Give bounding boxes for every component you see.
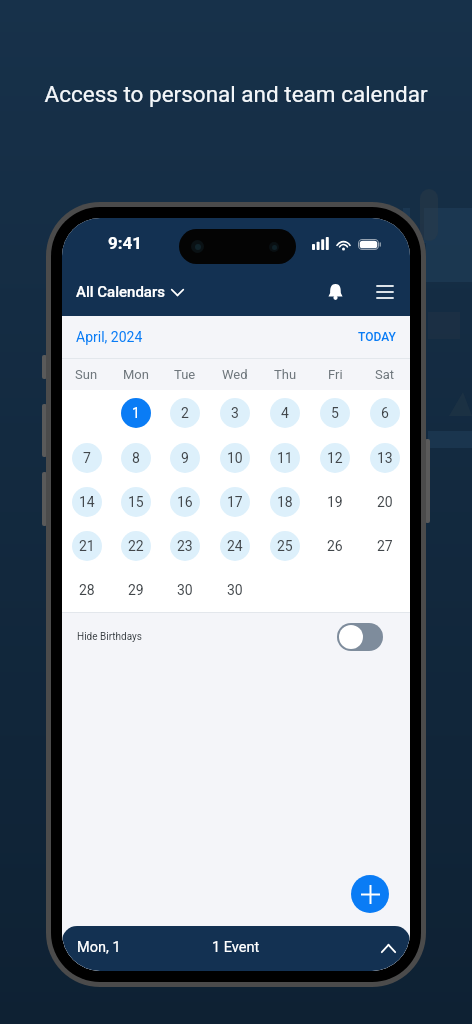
- staticText: 25: [277, 538, 293, 554]
- staticText: 30: [227, 582, 243, 598]
- staticText: April, 2024: [76, 329, 143, 345]
- button[interactable]: Hide Birthdays: [62, 613, 410, 660]
- button[interactable]: 17: [210, 480, 260, 524]
- button[interactable]: 13: [360, 435, 410, 480]
- staticText: 23: [177, 538, 193, 554]
- button[interactable]: TODAY: [358, 330, 396, 344]
- staticText: All Calendars: [76, 283, 165, 301]
- button[interactable]: 29: [111, 568, 160, 612]
- staticText: 2: [181, 405, 189, 421]
- staticText: 27: [377, 538, 393, 554]
- button[interactable]: 9: [160, 435, 210, 480]
- staticText: 29: [128, 582, 144, 598]
- staticText: TODAY: [358, 330, 396, 344]
- button[interactable]: 3: [210, 390, 260, 435]
- staticText: 13: [377, 450, 393, 466]
- button[interactable]: 28: [62, 568, 111, 612]
- staticText: 16: [177, 494, 193, 510]
- button[interactable]: 20: [360, 480, 410, 524]
- button[interactable]: 23: [160, 524, 210, 568]
- staticText: 14: [79, 494, 95, 510]
- button[interactable]: 18: [260, 480, 310, 524]
- button[interactable]: April, 2024: [76, 329, 143, 345]
- button[interactable]: 21: [62, 524, 111, 568]
- staticText: 8: [132, 450, 140, 466]
- button[interactable]: 15: [111, 480, 160, 524]
- button[interactable]: 30: [210, 568, 260, 612]
- button[interactable]: 1: [111, 390, 160, 435]
- button[interactable]: 12: [310, 435, 360, 480]
- button[interactable]: 2: [160, 390, 210, 435]
- button[interactable]: Mon, 1: [62, 926, 410, 971]
- staticText: 9: [181, 450, 189, 466]
- staticText: 1 Event: [212, 939, 260, 956]
- staticText: Sun: [75, 367, 98, 382]
- staticText: Tue: [174, 367, 196, 382]
- staticText: 26: [327, 538, 343, 554]
- staticText: 17: [227, 494, 243, 510]
- staticText: 28: [79, 582, 95, 598]
- button[interactable]: Menu: [369, 276, 400, 308]
- button[interactable]: 7: [62, 435, 111, 480]
- staticText: 10: [227, 450, 243, 466]
- staticText: Sat: [375, 367, 395, 382]
- staticText: 6: [381, 405, 389, 421]
- staticText: Thu: [274, 367, 297, 382]
- staticText: Hide Birthdays: [77, 631, 142, 643]
- button[interactable]: 11: [260, 435, 310, 480]
- staticText: 20: [377, 494, 393, 510]
- staticText: Wed: [222, 367, 248, 382]
- staticText: Mon, 1: [77, 939, 121, 956]
- staticText: 4: [281, 405, 289, 421]
- button[interactable]: 22: [111, 524, 160, 568]
- staticText: 7: [83, 450, 91, 466]
- button[interactable]: 25: [260, 524, 310, 568]
- button[interactable]: Notifications: [319, 275, 351, 309]
- staticText: 21: [79, 538, 95, 554]
- button[interactable]: 4: [260, 390, 310, 435]
- staticText: 15: [128, 494, 144, 510]
- staticText: 11: [277, 450, 293, 466]
- staticText: 22: [128, 538, 144, 554]
- button[interactable]: 24: [210, 524, 260, 568]
- button[interactable]: 5: [310, 390, 360, 435]
- button[interactable]: All Calendars: [76, 278, 185, 306]
- button[interactable]: 30: [160, 568, 210, 612]
- button[interactable]: 26: [310, 524, 360, 568]
- staticText: Fri: [328, 367, 343, 382]
- staticText: 19: [327, 494, 343, 510]
- button[interactable]: Add event: [351, 875, 389, 913]
- button[interactable]: 27: [360, 524, 410, 568]
- button[interactable]: 6: [360, 390, 410, 435]
- button[interactable]: 10: [210, 435, 260, 480]
- staticText: 1: [132, 405, 140, 421]
- button[interactable]: 16: [160, 480, 210, 524]
- staticText: Access to personal and team calendar: [44, 81, 428, 107]
- staticText: 3: [231, 405, 239, 421]
- button[interactable]: 8: [111, 435, 160, 480]
- staticText: 9:41: [108, 233, 143, 253]
- staticText: 30: [177, 582, 193, 598]
- button[interactable]: 14: [62, 480, 111, 524]
- staticText: 5: [331, 405, 339, 421]
- staticText: 18: [277, 494, 293, 510]
- staticText: Mon: [123, 367, 149, 382]
- button[interactable]: 19: [310, 480, 360, 524]
- staticText: 12: [327, 450, 343, 466]
- staticText: 24: [227, 538, 243, 554]
